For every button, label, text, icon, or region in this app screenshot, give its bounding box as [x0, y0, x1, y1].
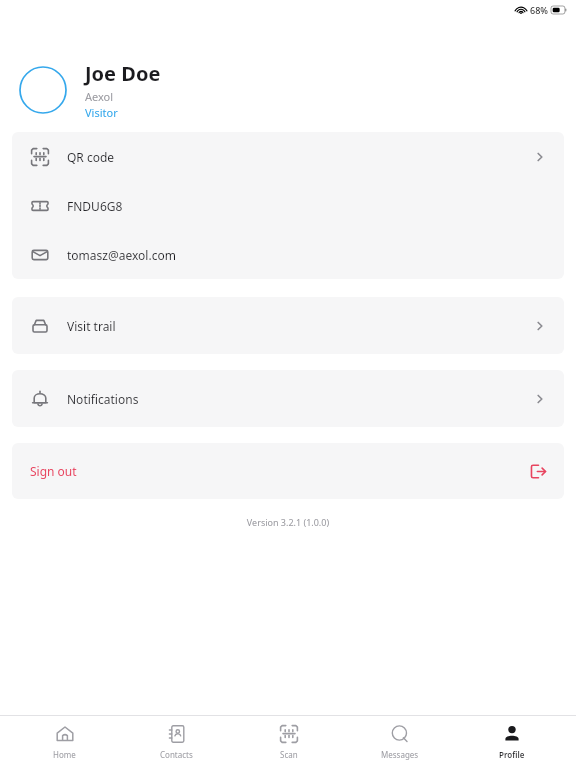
- staticText: QR code: [67, 149, 115, 165]
- staticText: Aexol: [85, 89, 114, 104]
- staticText: Sign out: [30, 463, 77, 479]
- button[interactable]: Visit trail: [12, 297, 564, 354]
- staticText: Visit trail: [67, 318, 116, 334]
- button[interactable]: QR code: [12, 132, 564, 181]
- staticText: Scan: [280, 749, 298, 760]
- button[interactable]: Contacts: [129, 719, 224, 765]
- staticText: Version 3.2.1 (1.0.0): [0, 516, 576, 528]
- button[interactable]: FNDU6G8: [12, 181, 564, 230]
- staticText: 68%: [530, 4, 548, 16]
- staticText: Home: [53, 749, 76, 760]
- button[interactable]: Messages: [352, 719, 447, 765]
- staticText: Profile: [499, 749, 525, 760]
- button[interactable]: Home: [17, 719, 112, 765]
- button[interactable]: Sign out: [12, 443, 564, 499]
- button[interactable]: Scan: [241, 719, 336, 765]
- staticText: Messages: [381, 749, 419, 760]
- staticText: Visitor: [85, 105, 118, 120]
- staticText: Notifications: [67, 391, 139, 407]
- button[interactable]: tomasz@aexol.com: [12, 230, 564, 279]
- staticText: Contacts: [160, 749, 193, 760]
- button[interactable]: Notifications: [12, 370, 564, 427]
- staticText: FNDU6G8: [67, 198, 123, 214]
- button[interactable]: Profile: [464, 719, 559, 765]
- staticText: Joe Doe: [85, 60, 161, 87]
- staticText: tomasz@aexol.com: [67, 247, 176, 263]
